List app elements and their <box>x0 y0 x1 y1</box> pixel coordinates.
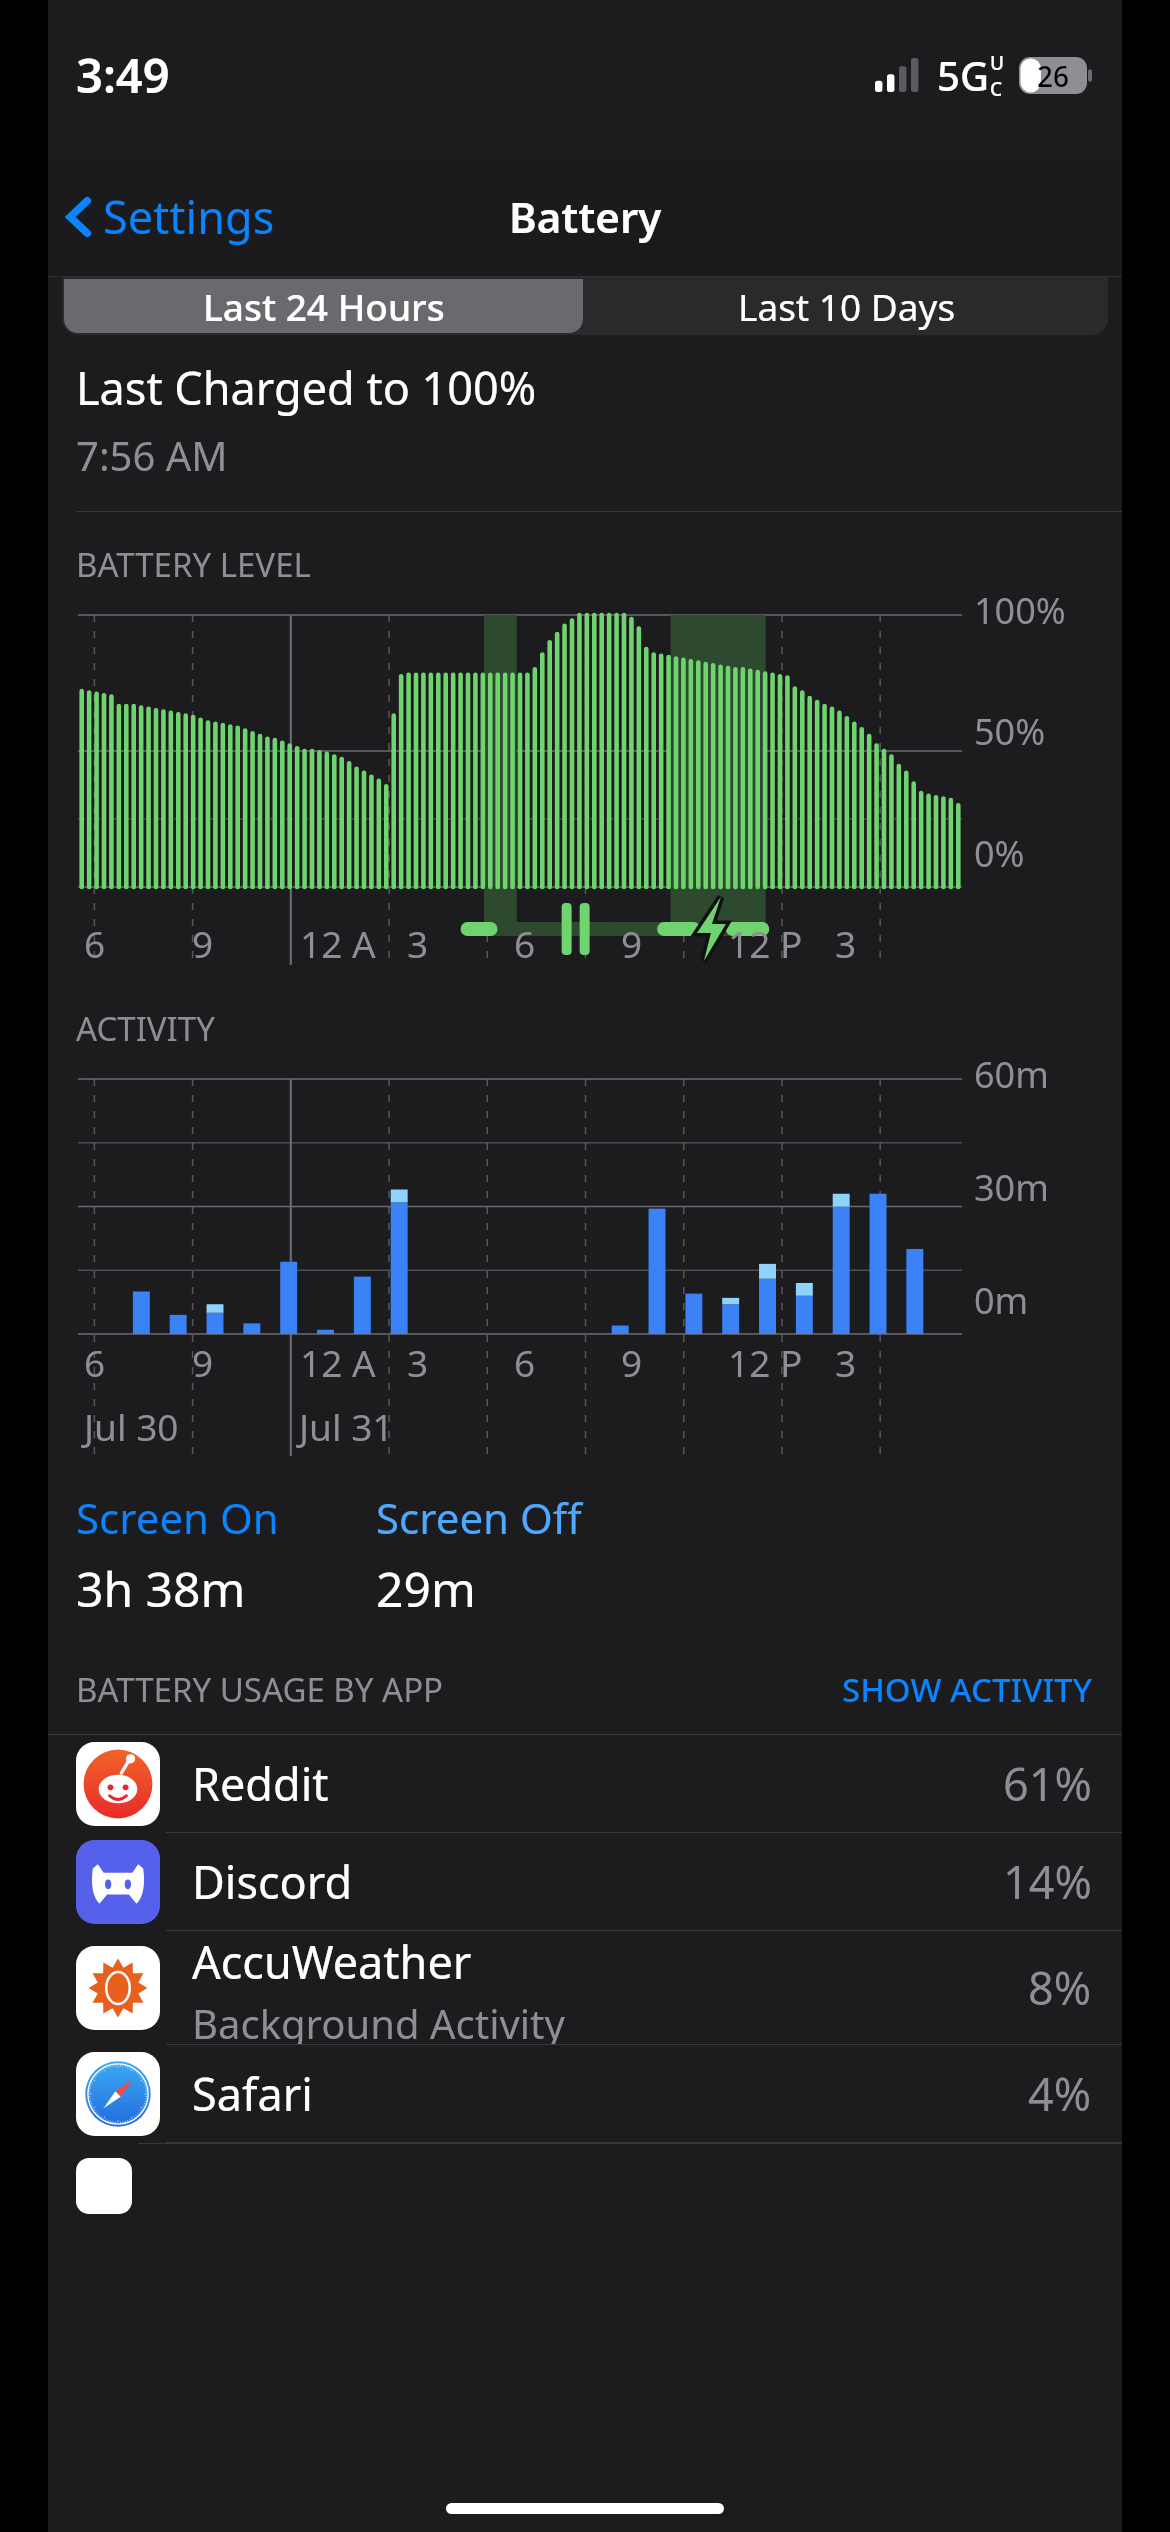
staticText: 4% <box>1028 2063 1092 2124</box>
staticText: 3 <box>835 1337 857 1387</box>
staticText: Battery <box>509 188 662 245</box>
staticText: Jul 31 <box>299 1401 394 1451</box>
staticText: Last Charged to 100% <box>76 357 537 418</box>
staticText: Jul 30 <box>84 1401 179 1451</box>
button[interactable]: Discord <box>48 1833 1122 1931</box>
staticText: BATTERY LEVEL <box>76 542 311 587</box>
staticText: 6 <box>84 1337 106 1387</box>
staticText: U <box>990 50 1005 76</box>
staticText: C <box>990 76 1003 102</box>
staticText: 14% <box>1003 1851 1092 1912</box>
staticText: 3 <box>407 1337 429 1387</box>
staticText: AccuWeather <box>192 1931 472 1992</box>
staticText: 29m <box>376 1556 476 1621</box>
staticText: 12 P <box>728 918 803 968</box>
staticText: 3h 38m <box>76 1556 246 1621</box>
staticText: Screen Off <box>376 1489 582 1546</box>
staticText: 61% <box>1003 1753 1092 1814</box>
button[interactable]: Last 10 Days <box>585 277 1108 335</box>
staticText: 3:49 <box>76 43 170 107</box>
staticText: Safari <box>192 2063 313 2124</box>
staticText: 3 <box>407 918 429 968</box>
staticText: BATTERY USAGE BY APP <box>76 1667 444 1712</box>
staticText: 100% <box>974 586 1066 635</box>
staticText: 0m <box>974 1276 1029 1325</box>
staticText: SHOW ACTIVITY <box>842 1667 1092 1712</box>
staticText: Settings <box>103 186 275 247</box>
staticText: 0% <box>974 829 1025 878</box>
button[interactable]: Settings <box>58 178 283 255</box>
staticText: 3 <box>835 918 857 968</box>
button[interactable]: Last 24 Hours <box>64 279 583 333</box>
staticText: 30m <box>974 1163 1049 1212</box>
staticText: 12 A <box>300 918 376 968</box>
staticText: 60m <box>974 1050 1049 1099</box>
staticText: Discord <box>192 1851 353 1912</box>
staticText: Screen On <box>76 1489 279 1546</box>
staticText: 7:56 AM <box>76 428 228 482</box>
staticText: 6 <box>84 918 106 968</box>
staticText: 9 <box>192 1337 214 1387</box>
staticText: 5G <box>937 48 989 102</box>
staticText: ACTIVITY <box>76 1006 215 1051</box>
button[interactable]: AccuWeather <box>48 1931 1122 2045</box>
staticText: 12 P <box>728 1337 803 1387</box>
staticText: 9 <box>621 918 643 968</box>
staticText: Background Activity <box>192 1996 565 2044</box>
button[interactable]: SHOW ACTIVITY <box>842 1667 1092 1712</box>
staticText: Reddit <box>192 1753 329 1814</box>
staticText: 6 <box>514 1337 536 1387</box>
staticText: 8% <box>1028 1957 1092 2018</box>
staticText: 9 <box>192 918 214 968</box>
staticText: Last 10 Days <box>738 281 956 331</box>
staticText: 26 <box>1037 57 1070 94</box>
staticText: 50% <box>974 707 1046 756</box>
button[interactable]: Safari <box>48 2045 1122 2143</box>
staticText: 9 <box>621 1337 643 1387</box>
staticText: 12 A <box>300 1337 376 1387</box>
staticText: Last 24 Hours <box>203 281 445 331</box>
button[interactable]: Reddit <box>48 1735 1122 1833</box>
staticText: 6 <box>514 918 536 968</box>
